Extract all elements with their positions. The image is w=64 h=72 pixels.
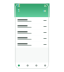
button[interactable]: Tab 0 bbox=[14, 64, 23, 66]
button[interactable]: Tab 2 bbox=[32, 64, 41, 66]
button[interactable] bbox=[14, 23, 49, 29]
button[interactable]: Tab 3 bbox=[41, 64, 50, 66]
button[interactable] bbox=[14, 35, 49, 41]
button[interactable]: Tab 1 bbox=[23, 64, 32, 66]
staticText: oooo bbox=[43, 0, 46, 13]
button[interactable] bbox=[14, 29, 49, 35]
staticText: 9:41 bbox=[17, 0, 19, 13]
button[interactable] bbox=[14, 41, 49, 47]
button[interactable] bbox=[14, 17, 49, 23]
staticText: Title bbox=[17, 21, 27, 28]
